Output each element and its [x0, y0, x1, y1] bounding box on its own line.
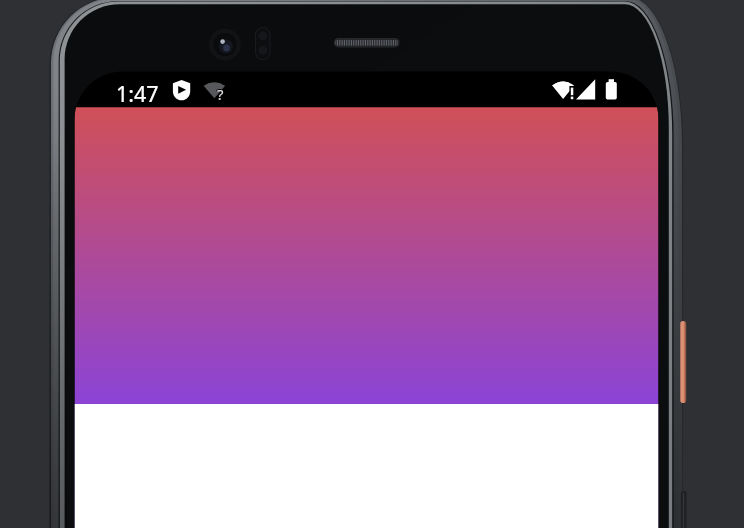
button[interactable]: Wi-Fi state unknown [200, 77, 227, 102]
button[interactable]: App splash artwork [75, 107, 659, 404]
button[interactable]: Content sheet [75, 404, 659, 528]
button[interactable]: 1:47 [116, 79, 159, 108]
button[interactable]: Protected playback [171, 77, 193, 102]
button[interactable]: Volume [678, 489, 689, 528]
button[interactable]: Mobile signal [574, 77, 598, 102]
button[interactable]: Battery full [603, 77, 621, 102]
button[interactable]: Wi-Fi connected, no internet [549, 77, 576, 102]
staticText: ? [217, 84, 224, 104]
staticText: ? [216, 83, 224, 105]
button[interactable]: Power [678, 319, 689, 405]
